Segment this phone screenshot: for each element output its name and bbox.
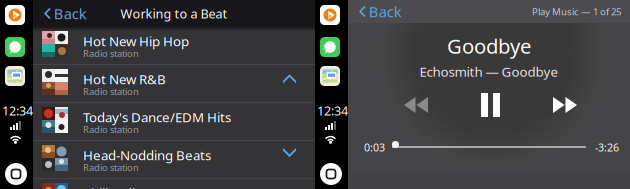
button[interactable]: Maps: [320, 66, 340, 86]
staticText: Back: [369, 1, 402, 21]
staticText: Radio station: [83, 123, 139, 136]
button[interactable]: Home: [5, 163, 27, 185]
staticText: Radio station: [83, 85, 139, 98]
staticText: Hot New R&B: [83, 70, 166, 88]
staticText: Goodbye: [447, 32, 531, 60]
button[interactable]: Messages: [320, 37, 340, 57]
button[interactable]: Hot New Hip Hop: [33, 27, 315, 64]
staticText: 12:34: [2, 102, 33, 119]
button[interactable]: Today's Dance/EDM Hits: [33, 103, 315, 140]
button[interactable]: Back: [348, 0, 410, 27]
button[interactable]: Music: [5, 5, 25, 25]
staticText: Hot New Hip Hop: [83, 32, 189, 50]
staticText: Play Music — 1 of 25: [532, 5, 621, 18]
staticText: Head-Nodding Beats: [83, 146, 211, 164]
staticText: Radio station: [83, 161, 139, 174]
button[interactable]: Messages: [5, 37, 25, 57]
button[interactable]: Music: [320, 5, 340, 25]
button[interactable]: Rewind: [404, 97, 428, 113]
button[interactable]: Maps: [5, 66, 25, 86]
staticText: Radio station: [83, 47, 139, 60]
button[interactable]: Pause: [481, 93, 500, 117]
staticText: Back: [54, 3, 87, 23]
staticText: Today's Dance/EDM Hits: [83, 108, 231, 126]
button[interactable]: Hot New R&B: [33, 65, 315, 102]
button[interactable]: Head-Nodding Beats: [33, 141, 315, 178]
staticText: 12:34: [317, 102, 348, 119]
staticText: -3:26: [595, 140, 619, 154]
staticText: 0:03: [364, 140, 385, 154]
button[interactable]: Home: [320, 163, 342, 185]
staticText: Chill Indie Beats: [83, 184, 181, 189]
button[interactable]: Chill Indie Beats: [33, 179, 315, 189]
staticText: Echosmith — Goodbye: [419, 63, 558, 81]
button[interactable]: Back: [33, 0, 95, 29]
staticText: Working to a Beat: [120, 5, 227, 22]
button[interactable]: Fast forward: [553, 97, 577, 113]
